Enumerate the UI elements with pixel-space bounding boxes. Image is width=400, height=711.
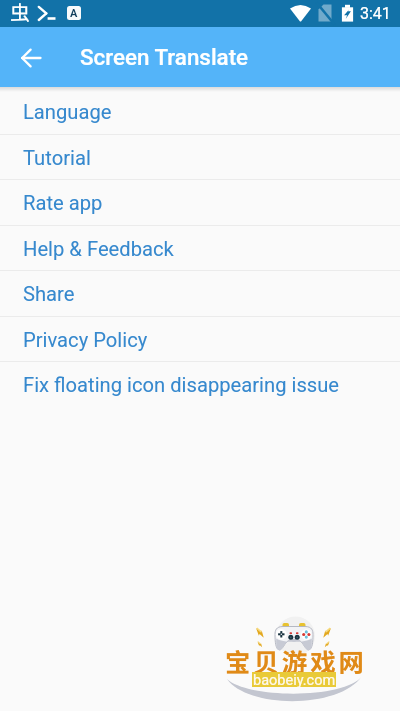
- button[interactable]: Rate app: [0, 179, 400, 225]
- button[interactable]: Fix floating icon disappearing issue: [0, 361, 400, 407]
- button[interactable]: Tutorial: [0, 134, 400, 180]
- staticText: Language: [23, 100, 112, 124]
- button[interactable]: Privacy Policy: [0, 316, 400, 362]
- staticText: Screen Translate: [80, 44, 249, 70]
- staticText: 宝贝游戏网: [225, 642, 368, 679]
- staticText: 虫: [10, 0, 30, 24]
- staticText: Share: [23, 282, 75, 306]
- button[interactable]: Language: [0, 88, 400, 134]
- staticText: Rate app: [23, 191, 103, 215]
- staticText: baobeiy.com: [253, 672, 336, 687]
- staticText: 3:41: [360, 4, 391, 23]
- staticText: Help & Feedback: [23, 237, 174, 261]
- staticText: A: [70, 7, 78, 20]
- staticText: Tutorial: [23, 146, 91, 170]
- staticText: Fix floating icon disappearing issue: [23, 373, 340, 397]
- button[interactable]: Share: [0, 270, 400, 316]
- staticText: Privacy Policy: [23, 328, 148, 352]
- button[interactable]: Back: [3, 30, 59, 86]
- button[interactable]: Help & Feedback: [0, 225, 400, 271]
